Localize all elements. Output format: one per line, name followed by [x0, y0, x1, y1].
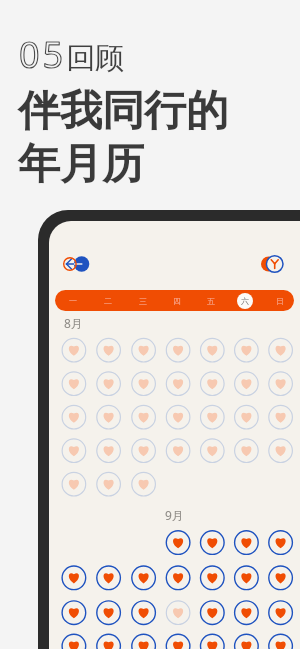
staticText: 二 [104, 296, 112, 306]
button[interactable]: 四 [165, 290, 189, 311]
staticText: 05回顾 [19, 30, 125, 79]
staticText: 8月 [64, 315, 83, 331]
staticText: 五 [207, 296, 215, 306]
button[interactable]: 六 [233, 290, 257, 311]
staticText: 9月 [165, 507, 184, 523]
staticText: 日 [276, 296, 284, 306]
staticText: 四 [173, 296, 181, 306]
button[interactable]: 日 [268, 290, 292, 311]
button[interactable]: 一 [61, 290, 85, 311]
staticText: 伴我同行的 年月历 [18, 85, 228, 190]
staticText: 三 [139, 296, 147, 306]
staticText: 六 [241, 296, 249, 306]
button[interactable]: Profile [259, 252, 287, 276]
button[interactable]: 二 [96, 290, 120, 311]
button[interactable]: 五 [199, 290, 223, 311]
staticText: 一 [69, 296, 77, 306]
button[interactable]: 三 [131, 290, 155, 311]
button[interactable]: Back [61, 253, 93, 275]
